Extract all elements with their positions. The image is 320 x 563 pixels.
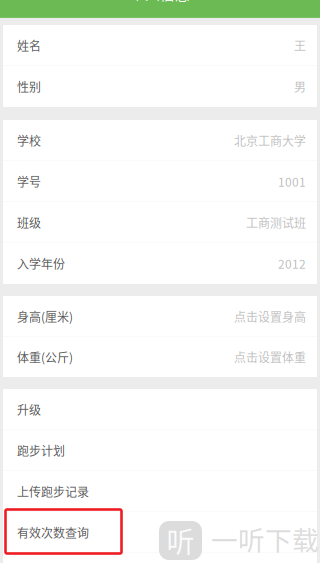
staticText: 升级 xyxy=(17,401,41,418)
button[interactable]: 学校 xyxy=(3,120,317,161)
staticText: 男 xyxy=(294,78,306,95)
staticText: 北京工商大学 xyxy=(234,132,306,149)
button[interactable]: 上传跑步记录 xyxy=(3,471,317,512)
button[interactable]: 有效次数查询 xyxy=(3,512,317,553)
staticText: 2012 xyxy=(278,255,306,272)
button[interactable]: 学号 xyxy=(3,161,317,202)
staticText: 工商测试班 xyxy=(246,214,306,231)
button[interactable]: 入学年份 xyxy=(3,243,317,284)
staticText: 点击设置身高 xyxy=(234,308,306,325)
button[interactable]: 跑步计划 xyxy=(3,430,317,471)
staticText: 身高(厘米) xyxy=(17,308,73,325)
button[interactable]: 身高(厘米) xyxy=(3,296,317,337)
button[interactable]: 姓名 xyxy=(3,25,317,66)
button[interactable]: 班级 xyxy=(3,202,317,243)
staticText: 学校 xyxy=(17,132,41,149)
staticText: 1001 xyxy=(278,173,306,190)
staticText: 体重(公斤) xyxy=(17,348,73,366)
staticText: 王 xyxy=(294,37,306,54)
staticText: 有效次数查询 xyxy=(17,524,89,541)
button[interactable]: 性别 xyxy=(3,66,317,107)
staticText: 个人信息 xyxy=(130,0,190,4)
staticText: 入学年份 xyxy=(17,255,65,272)
button[interactable]: 体重(公斤) xyxy=(3,337,317,377)
staticText: 听 xyxy=(166,520,194,561)
staticText: 点击设置体重 xyxy=(234,348,306,366)
staticText: 上传跑步记录 xyxy=(17,483,89,500)
staticText: 性别 xyxy=(17,78,41,95)
staticText: 姓名 xyxy=(17,37,41,54)
staticText: 班级 xyxy=(17,214,41,231)
button[interactable] xyxy=(3,553,317,563)
staticText: 跑步计划 xyxy=(17,442,65,459)
staticText: 一听下载 xyxy=(211,519,319,558)
button[interactable]: 升级 xyxy=(3,389,317,430)
staticText: 学号 xyxy=(17,173,41,190)
